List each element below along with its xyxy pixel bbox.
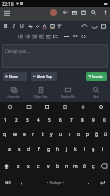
button[interactable]: Ekran Alıntı [3,72,27,81]
button[interactable]: , [16,174,27,190]
button[interactable]: Align [44,31,52,41]
button[interactable]: w [10,127,20,141]
button[interactable]: h [53,141,62,158]
button[interactable]: İmzala [86,72,107,81]
button[interactable]: 8 [77,112,88,127]
button[interactable]: k [71,141,80,158]
button[interactable]: 2 [11,112,22,127]
button[interactable]: 1 [0,112,11,127]
button[interactable]: GIF [19,102,38,112]
staticText: i [102,146,104,153]
button[interactable]: Emoji [0,102,19,112]
button[interactable]: Numbered list [23,31,31,41]
button[interactable]: Search [88,7,99,18]
button[interactable]: Reply [60,7,71,18]
staticText: !#1 [5,180,11,185]
button[interactable]: 7 [66,112,77,127]
staticText: w [13,131,17,138]
button[interactable]: Line spacing [51,31,59,41]
button[interactable]: d [24,141,34,158]
button[interactable]: Alıntı Yap [31,72,57,81]
button[interactable]: ö [80,158,89,174]
button[interactable]: m [71,158,80,174]
button[interactable]: b [53,158,62,174]
button[interactable]: 5 [44,112,55,127]
button[interactable]: 6 [55,112,66,127]
button[interactable]: ç [89,158,98,174]
button[interactable]: Redo [90,21,98,31]
button[interactable]: Outdent [37,31,45,41]
button[interactable]: Bulleted list [16,31,24,41]
button[interactable]: Horizontal rule [62,31,70,41]
button[interactable]: Archive [69,7,80,18]
button[interactable]: Diğer Seç [27,83,54,102]
button[interactable]: g [44,141,53,158]
button[interactable]: 0 [99,112,110,127]
staticText: g [47,146,51,153]
button[interactable]: Quote [71,31,79,41]
button[interactable]: t [38,127,47,141]
button[interactable]: B [2,21,10,31]
button[interactable]: y [47,127,56,141]
button[interactable]: q [0,127,10,141]
button[interactable]: z [13,158,23,174]
button[interactable]: Link [33,21,41,31]
staticText: l [84,146,86,153]
button[interactable]: j [62,141,71,158]
button[interactable]: e [20,127,29,141]
button[interactable]: Başka Bir [54,83,82,102]
button[interactable]: Shift [0,158,13,174]
button[interactable]: Favorite [0,83,27,102]
button[interactable]: Highlight [48,21,56,31]
button[interactable]: . [83,174,94,190]
button[interactable]: Clipboard [56,102,74,112]
button[interactable]: ğ [92,127,101,141]
button[interactable]: ü [101,127,110,141]
button[interactable]: Voice input [74,102,92,112]
staticText: h [56,146,60,153]
button[interactable]: r [29,127,38,141]
button[interactable]: Ara [82,83,110,102]
button[interactable]: More options [100,7,110,18]
button[interactable]: Space [27,174,83,190]
button[interactable]: f [34,141,44,158]
button[interactable]: c [33,158,43,174]
button[interactable]: Enter key [94,174,110,190]
button[interactable]: 4 [33,112,44,127]
button[interactable]: 9 [88,112,99,127]
button[interactable]: s [14,141,24,158]
staticText: s [18,146,21,153]
button[interactable]: More formats [99,21,107,31]
staticText: 1 [4,117,7,123]
button[interactable]: o [74,127,83,141]
button[interactable]: !#1 [0,174,16,190]
button[interactable]: Cevap yaz... [2,44,108,68]
button[interactable]: p [83,127,92,141]
staticText: k [74,146,77,153]
button[interactable]: U [18,21,26,31]
button[interactable]: ş [89,141,98,158]
button[interactable]: Account [48,7,59,18]
button[interactable]: v [43,158,53,174]
button[interactable]: Stickers [38,102,56,112]
button[interactable]: Code [79,31,87,41]
button[interactable]: Delete [78,7,89,18]
button[interactable]: Backspace [98,158,110,174]
button[interactable]: I [10,21,18,31]
button[interactable]: l [80,141,89,158]
button[interactable]: Indent [30,31,38,41]
button[interactable]: a [4,141,14,158]
button[interactable]: Clear format [55,21,63,31]
button[interactable]: ı [65,127,74,141]
button[interactable]: Keyboard settings [92,102,110,112]
button[interactable]: Text colour [40,21,48,31]
button[interactable]: x [23,158,33,174]
button[interactable]: 3 [22,112,33,127]
button[interactable]: Menu [1,7,12,18]
staticText: 2 [15,117,18,123]
button[interactable]: u [56,127,65,141]
button[interactable]: Undo [80,21,88,31]
button[interactable]: n [62,158,71,174]
button[interactable]: Strikethrough [26,21,34,31]
button[interactable]: i [98,141,107,158]
